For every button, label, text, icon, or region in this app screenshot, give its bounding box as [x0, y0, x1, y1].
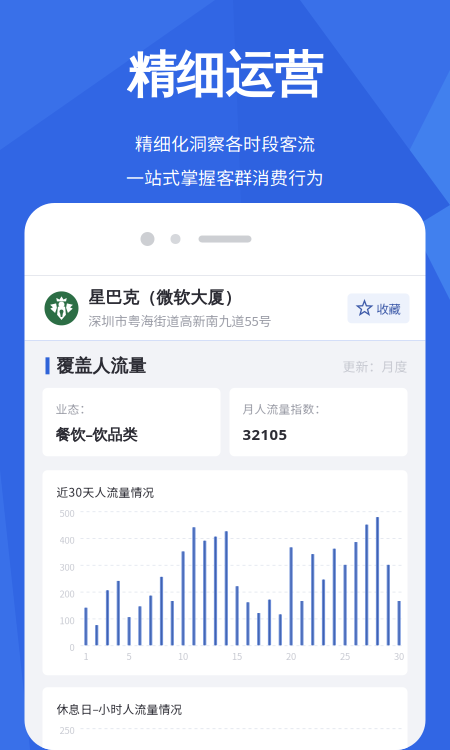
staticText: 精细化洞察各时段客流	[135, 130, 315, 156]
staticText: 业态：	[55, 400, 91, 417]
staticText: 星巴克（微软大厦）	[88, 287, 241, 308]
staticText: 一站式掌握客群消费行为	[126, 164, 324, 190]
button[interactable]: 收藏	[347, 293, 409, 323]
staticText: 收藏	[376, 299, 400, 317]
staticText: 400	[59, 533, 74, 546]
staticText: 覆盖人流量	[56, 355, 146, 377]
staticText: 10	[178, 649, 188, 663]
staticText: 深圳市粤海街道高新南九道55号	[88, 311, 271, 330]
staticText: 30	[394, 649, 404, 663]
staticText: 500	[59, 506, 74, 520]
staticText: 5	[127, 649, 132, 663]
staticText: 25	[340, 649, 350, 663]
staticText: 300	[59, 560, 74, 573]
staticText: 月人流量指数：	[242, 400, 326, 417]
staticText: 20	[286, 649, 296, 663]
staticText: 精细运营	[127, 44, 323, 106]
staticText: 15	[232, 649, 242, 663]
staticText: 近30天人流量情况	[56, 483, 154, 500]
staticText: 更新：月度	[342, 357, 407, 375]
staticText: 0	[69, 640, 74, 654]
staticText: 200	[59, 587, 74, 600]
staticText: 1	[83, 649, 88, 663]
staticText: 休息日–小时人流量情况	[56, 700, 182, 717]
staticText: 250	[59, 723, 74, 737]
staticText: 餐饮–饮品类	[55, 424, 137, 444]
staticText: 100	[59, 613, 74, 627]
staticText: 32105	[242, 424, 287, 444]
